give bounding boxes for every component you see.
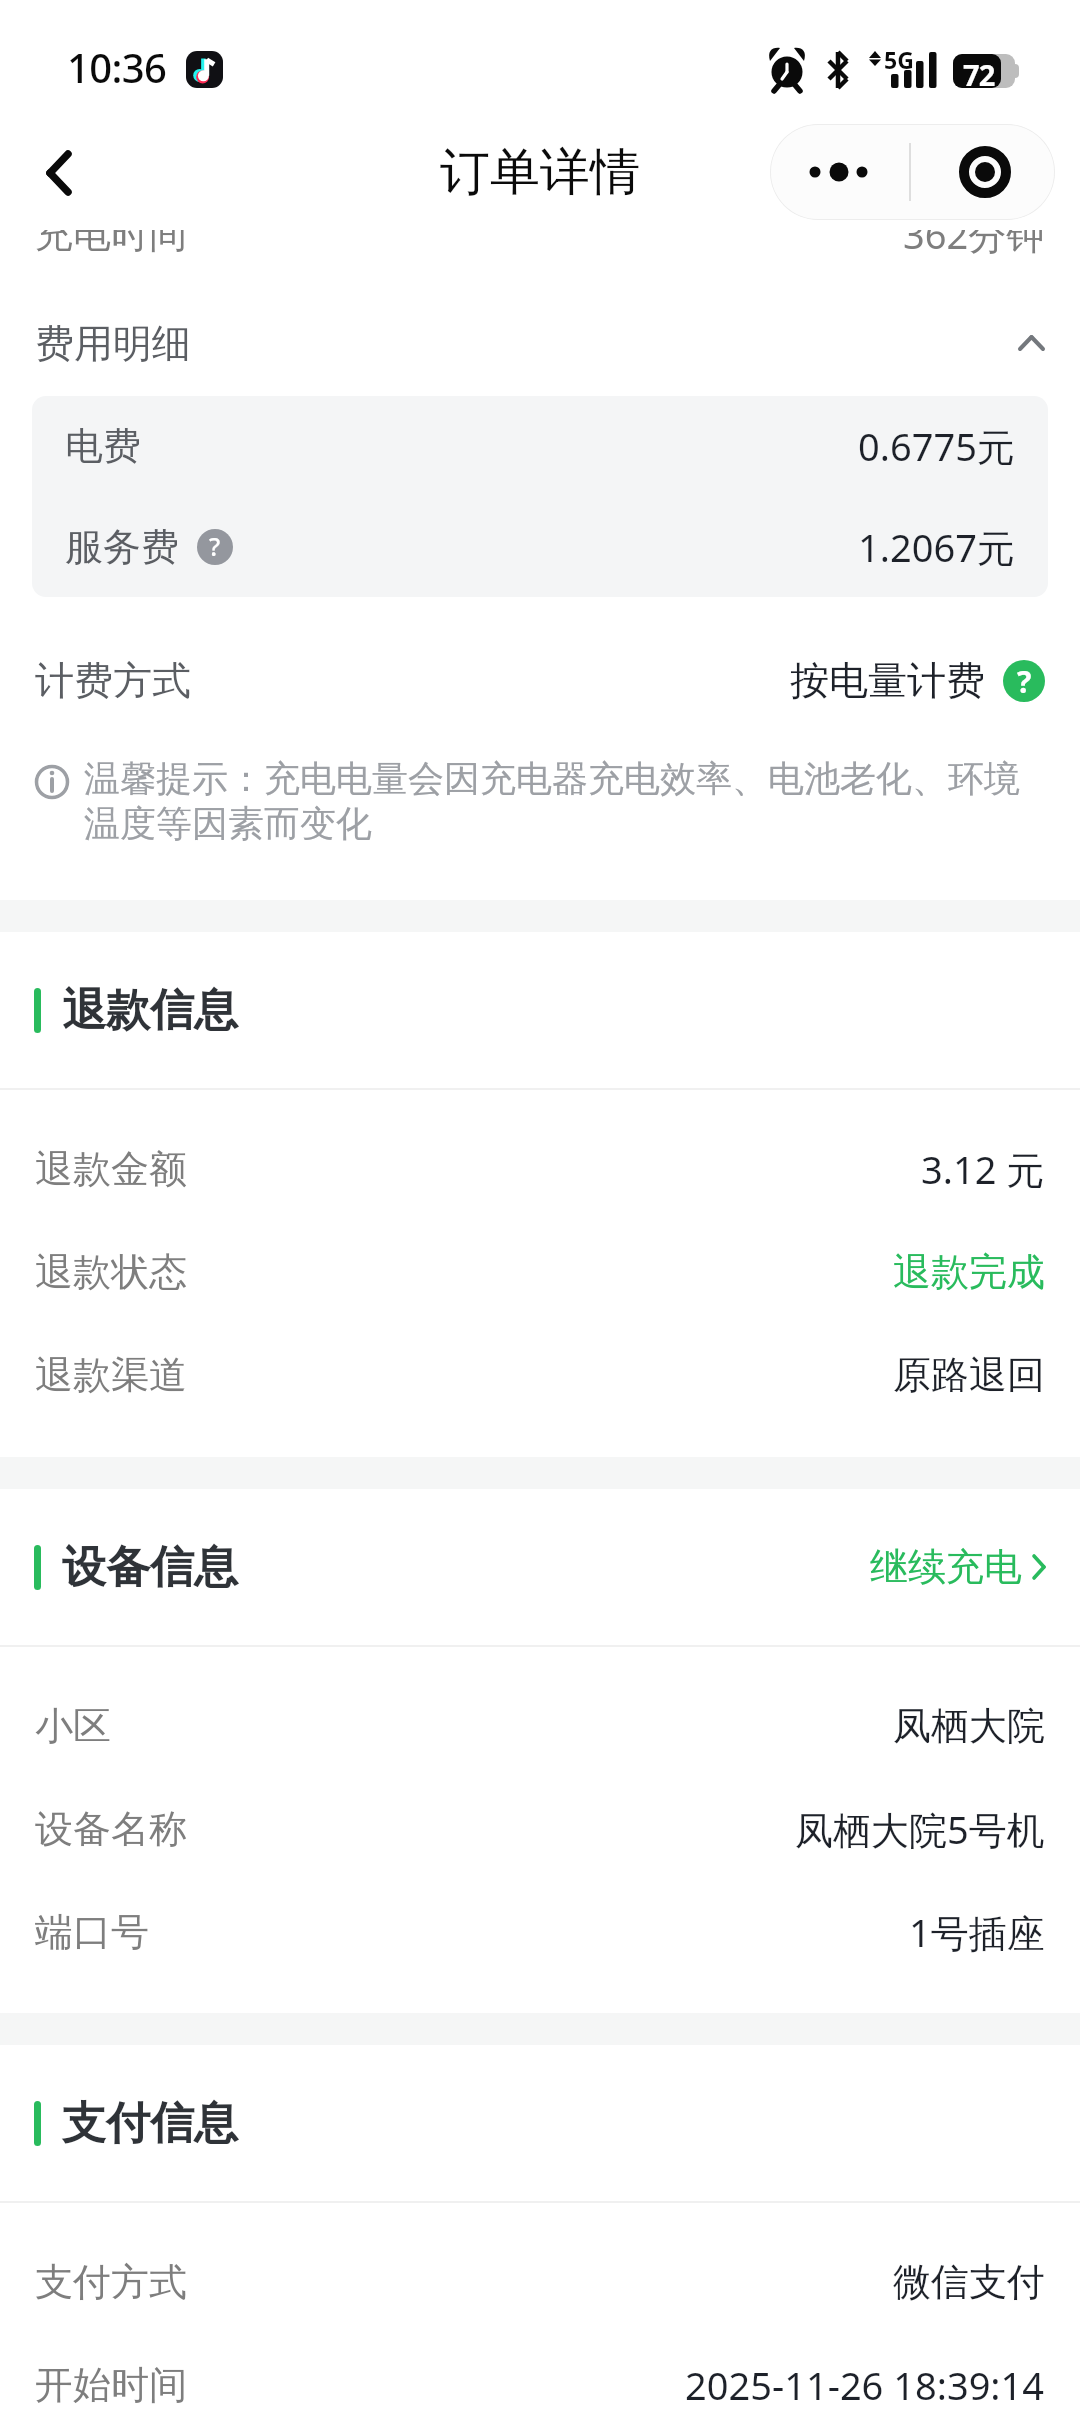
staticText: 1号插座 bbox=[909, 1906, 1045, 1958]
button[interactable]: Mini program menu bbox=[770, 124, 1055, 220]
staticText: 1.2067元 bbox=[858, 521, 1015, 573]
staticText: 3.12 元 bbox=[921, 1143, 1045, 1195]
staticText: 退款完成 bbox=[893, 1248, 1045, 1296]
staticText: 费用明细 bbox=[35, 319, 191, 368]
staticText: 退款渠道 bbox=[35, 1351, 187, 1399]
staticText: 凤栖大院5号机 bbox=[795, 1803, 1045, 1855]
button[interactable]: 端口号 bbox=[0, 1880, 1080, 1983]
button[interactable]: Billing help bbox=[1003, 660, 1045, 702]
staticText: 端口号 bbox=[35, 1908, 149, 1956]
staticText: 微信支付 bbox=[893, 2258, 1045, 2306]
staticText: 小区 bbox=[35, 1702, 111, 1750]
button[interactable]: 计费方式 bbox=[0, 597, 1080, 756]
staticText: 原路退回 bbox=[893, 1351, 1045, 1399]
staticText: 继续充电 bbox=[870, 1543, 1022, 1591]
staticText: 温馨提示：充电电量会因充电器充电效率、电池老化、环境温度等因素而变化 bbox=[84, 756, 1046, 847]
staticText: 凤栖大院 bbox=[893, 1702, 1045, 1750]
button[interactable]: 小区 bbox=[0, 1674, 1080, 1777]
staticText: 开始时间 bbox=[35, 2361, 187, 2409]
staticText: 5G bbox=[884, 44, 914, 75]
button[interactable]: Back bbox=[16, 122, 100, 230]
staticText: 362分钟 bbox=[903, 208, 1045, 260]
staticText: 支付信息 bbox=[62, 2096, 238, 2151]
staticText: 0.6775元 bbox=[858, 420, 1015, 472]
staticText: 2025-11-26 18:39:14 bbox=[685, 2359, 1045, 2411]
button[interactable]: 退款渠道 bbox=[0, 1323, 1080, 1426]
staticText: 72 bbox=[963, 55, 995, 94]
staticText: 服务费 bbox=[65, 523, 179, 571]
button[interactable]: 设备名称 bbox=[0, 1777, 1080, 1880]
button[interactable]: 继续充电 bbox=[870, 1543, 1046, 1591]
button[interactable]: 退款状态 bbox=[0, 1220, 1080, 1323]
staticText: 充电时间 bbox=[35, 210, 187, 258]
staticText: 设备名称 bbox=[35, 1805, 187, 1853]
staticText: 电费 bbox=[65, 422, 141, 470]
staticText: 10:36 bbox=[67, 40, 167, 94]
staticText: ? bbox=[209, 529, 221, 563]
button[interactable]: 退款金额 bbox=[0, 1117, 1080, 1220]
staticText: ? bbox=[1017, 661, 1032, 702]
button[interactable]: 费用明细 bbox=[0, 290, 1080, 396]
button[interactable]: 开始时间 bbox=[0, 2333, 1080, 2412]
staticText: 设备信息 bbox=[62, 1540, 238, 1595]
staticText: 退款金额 bbox=[35, 1145, 187, 1193]
staticText: 计费方式 bbox=[35, 656, 191, 705]
staticText: 支付方式 bbox=[35, 2258, 187, 2306]
staticText: 订单详情 bbox=[440, 141, 640, 204]
button[interactable]: 支付方式 bbox=[0, 2230, 1080, 2333]
staticText: 按电量计费 bbox=[790, 656, 985, 705]
button[interactable]: Service fee help bbox=[197, 529, 233, 565]
staticText: 退款信息 bbox=[62, 983, 238, 1038]
staticText: 退款状态 bbox=[35, 1248, 187, 1296]
